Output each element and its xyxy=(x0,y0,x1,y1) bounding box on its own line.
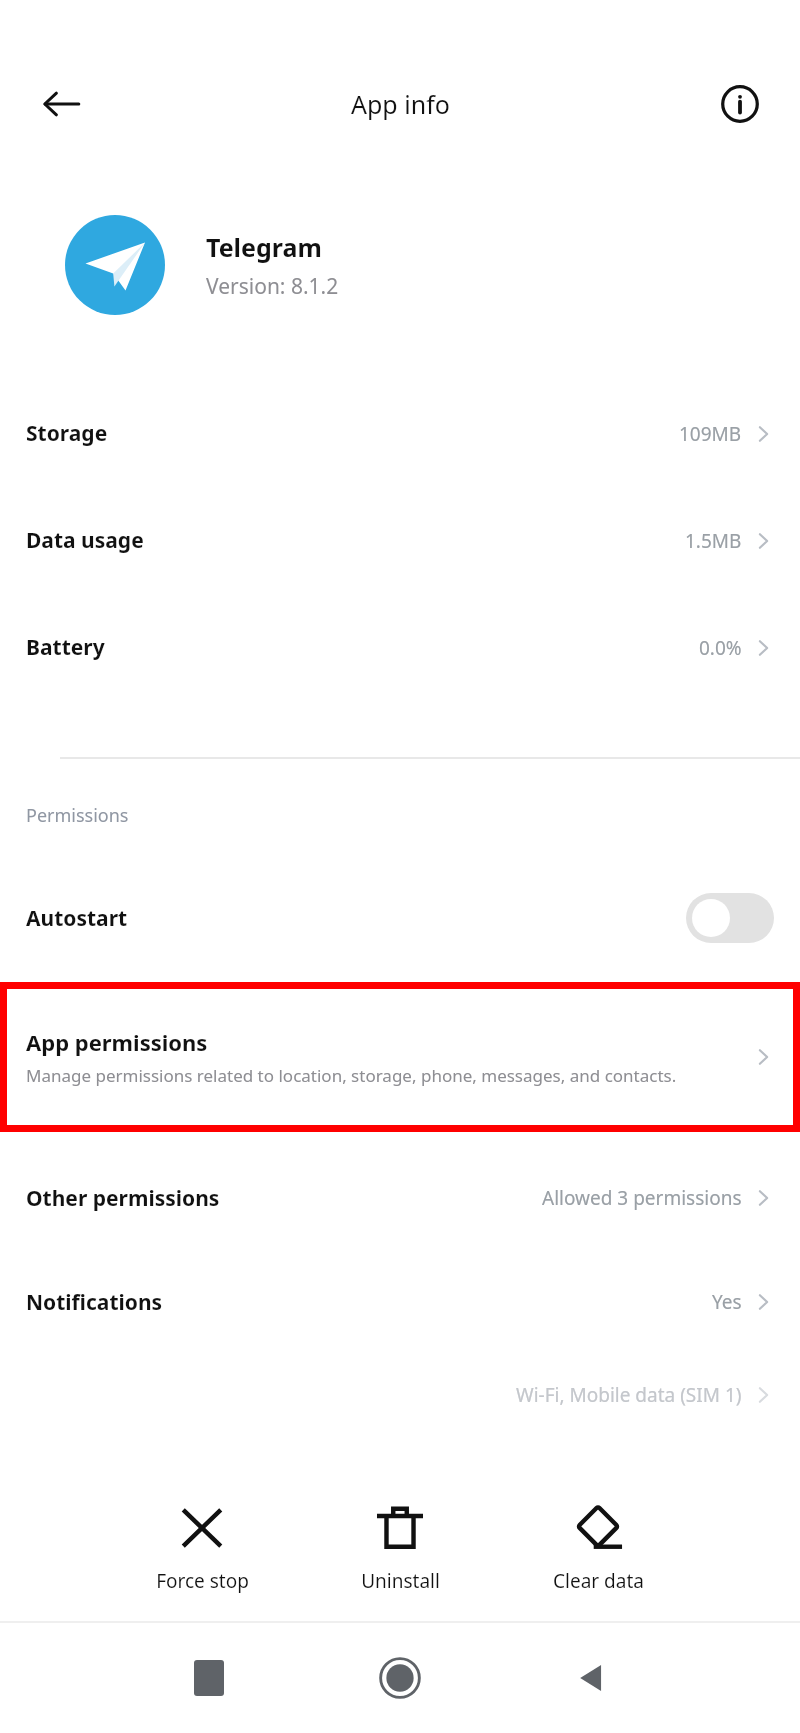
button[interactable]: Storage xyxy=(0,380,800,487)
staticText: Wi-Fi, Mobile data (SIM 1) xyxy=(516,1382,742,1408)
staticText: Notifications xyxy=(26,1288,163,1317)
staticText: Allowed 3 permissions xyxy=(542,1185,742,1211)
staticText: Force stop xyxy=(156,1568,249,1594)
staticText: Clear data xyxy=(553,1568,644,1594)
staticText: App info xyxy=(351,87,450,121)
staticText: Version: 8.1.2 xyxy=(206,272,339,301)
staticText: Telegram xyxy=(206,230,322,264)
button[interactable]: Uninstall xyxy=(324,1496,476,1600)
button[interactable]: Home xyxy=(364,1642,436,1714)
button[interactable]: Force stop xyxy=(126,1496,278,1600)
button[interactable]: Other permissions xyxy=(0,1146,800,1250)
staticText: 109MB xyxy=(679,421,742,447)
button[interactable]: Autostart xyxy=(0,872,800,964)
staticText: Manage permissions related to location, … xyxy=(26,1064,677,1087)
staticText: Autostart xyxy=(26,904,686,933)
staticText: 0.0% xyxy=(699,635,742,661)
staticText: Uninstall xyxy=(361,1568,440,1594)
button[interactable]: Back xyxy=(555,1642,627,1714)
staticText: Other permissions xyxy=(26,1184,220,1213)
staticText: 1.5MB xyxy=(685,528,742,554)
button[interactable]: App permissions xyxy=(0,982,800,1132)
button[interactable]: More info xyxy=(712,76,768,132)
button[interactable]: Wi-Fi, Mobile data (SIM 1) xyxy=(0,1354,800,1408)
staticText: Permissions xyxy=(26,803,129,828)
button[interactable]: Battery xyxy=(0,594,800,701)
staticText: Data usage xyxy=(26,526,144,555)
button[interactable]: Data usage xyxy=(0,487,800,594)
staticText: Storage xyxy=(26,419,108,448)
button[interactable]: Recents xyxy=(173,1642,245,1714)
button[interactable]: Clear data xyxy=(522,1496,674,1600)
staticText: Yes xyxy=(712,1289,742,1315)
staticText: Battery xyxy=(26,633,105,662)
staticText: App permissions xyxy=(26,1027,208,1057)
button[interactable]: Back xyxy=(34,76,90,132)
button[interactable]: Notifications xyxy=(0,1250,800,1354)
